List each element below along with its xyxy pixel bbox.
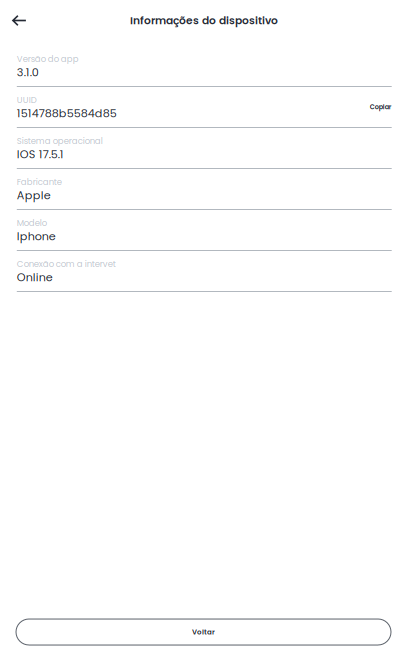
staticText: Copiar — [370, 102, 392, 111]
staticText: Iphone — [17, 229, 56, 244]
staticText: Versão do app — [17, 53, 79, 65]
staticText: Online — [17, 270, 53, 285]
staticText: Voltar — [192, 627, 215, 637]
staticText: Conexão com a intervet — [17, 258, 116, 270]
staticText: 1514788b5584d85 — [17, 106, 117, 121]
button[interactable]: Copiar — [360, 99, 392, 114]
staticText: Fabricante — [17, 176, 62, 188]
staticText: IOS 17.5.1 — [17, 147, 64, 162]
button[interactable]: Voltar — [16, 619, 391, 645]
staticText: Apple — [17, 188, 51, 203]
staticText: UUID — [17, 94, 37, 106]
staticText: Modelo — [17, 217, 47, 229]
staticText: Informações do dispositivo — [130, 13, 278, 28]
staticText: 3.1.0 — [17, 65, 39, 80]
button[interactable]: Back — [0, 4, 38, 36]
staticText: Sistema operacional — [17, 135, 103, 147]
